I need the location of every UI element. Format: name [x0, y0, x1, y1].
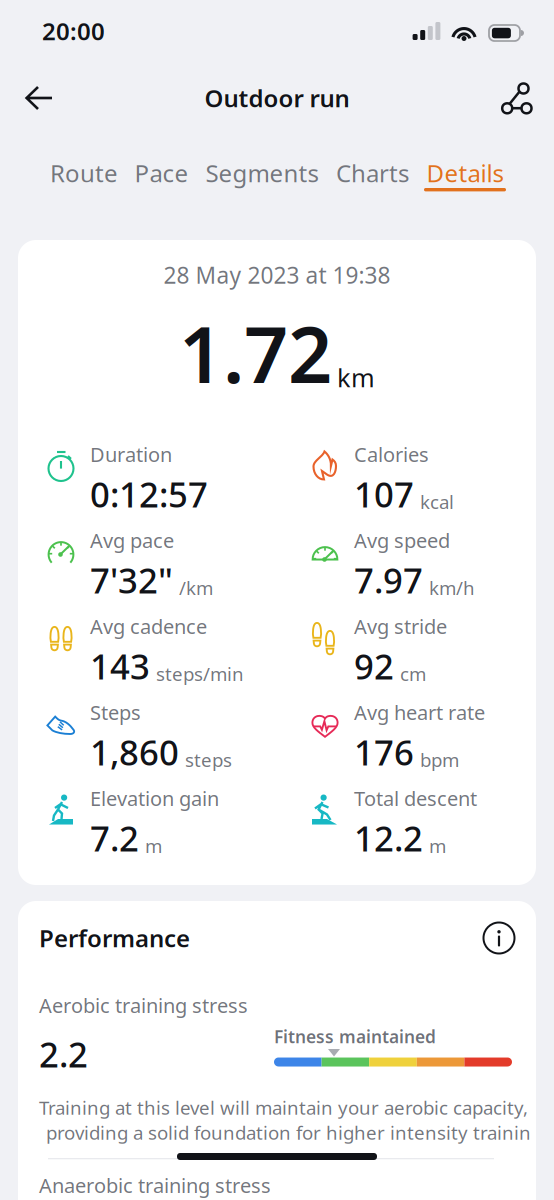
- staticText: Anaerobic training stress: [39, 1172, 271, 1199]
- button[interactable]: Back: [18, 75, 62, 121]
- staticText: Route: [50, 157, 118, 189]
- staticText: /km: [179, 575, 213, 600]
- staticText: kcal: [420, 489, 454, 514]
- staticText: Performance: [39, 922, 190, 954]
- staticText: m: [145, 833, 162, 858]
- button[interactable]: Pace: [132, 158, 190, 202]
- staticText: 0:12:57: [90, 471, 208, 517]
- staticText: 1.72: [179, 302, 332, 404]
- staticText: Duration: [90, 441, 172, 468]
- staticText: Fitness maintained: [274, 1025, 436, 1048]
- staticText: Total descent: [354, 785, 477, 812]
- staticText: Avg pace: [90, 527, 174, 554]
- staticText: steps/min: [156, 661, 244, 686]
- staticText: 28 May 2023 at 19:38: [163, 260, 390, 290]
- staticText: Steps: [90, 699, 141, 726]
- staticText: Calories: [354, 441, 429, 468]
- staticText: 20:00: [42, 15, 105, 47]
- staticText: 7.2: [90, 815, 139, 861]
- staticText: Training at this level will maintain you…: [39, 1095, 528, 1120]
- staticText: 176: [354, 729, 414, 775]
- staticText: km: [337, 361, 375, 394]
- staticText: Avg stride: [354, 613, 447, 640]
- staticText: 1,860: [90, 729, 179, 775]
- staticText: 2.2: [39, 1031, 88, 1077]
- staticText: Elevation gain: [90, 785, 219, 812]
- staticText: 92: [354, 643, 394, 689]
- staticText: Avg heart rate: [354, 699, 485, 726]
- staticText: Avg cadence: [90, 613, 207, 640]
- staticText: m: [429, 833, 446, 858]
- staticText: Outdoor run: [204, 82, 349, 114]
- staticText: 12.2: [354, 815, 423, 861]
- button[interactable]: Information: [481, 920, 517, 956]
- staticText: 107: [354, 471, 414, 517]
- button[interactable]: Route: [48, 158, 120, 202]
- button[interactable]: Details: [424, 158, 506, 202]
- staticText: steps: [185, 747, 232, 772]
- button[interactable]: Segments: [203, 158, 321, 202]
- staticText: cm: [400, 661, 426, 686]
- button[interactable]: Share: [492, 75, 536, 121]
- staticText: providing a solid foundation for higher …: [46, 1120, 531, 1145]
- staticText: Segments: [205, 157, 318, 189]
- staticText: 143: [90, 643, 150, 689]
- staticText: Pace: [134, 157, 188, 189]
- button[interactable]: Charts: [333, 158, 411, 202]
- staticText: Charts: [336, 157, 409, 189]
- staticText: km/h: [429, 575, 475, 600]
- staticText: Avg speed: [354, 527, 450, 554]
- staticText: Details: [426, 157, 503, 189]
- staticText: 7'32": [90, 557, 173, 603]
- staticText: 7.97: [354, 557, 423, 603]
- staticText: bpm: [420, 747, 459, 772]
- staticText: Aerobic training stress: [39, 992, 248, 1019]
